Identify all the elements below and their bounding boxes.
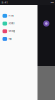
staticText: Activity bbox=[8, 22, 14, 25]
staticText: ▪▪▪ bbox=[51, 1, 54, 4]
button[interactable]: Activity bbox=[0, 20, 37, 27]
staticText: Profile bbox=[8, 15, 13, 17]
staticText: 9:41 bbox=[1, 1, 7, 4]
staticText: Settings bbox=[8, 30, 15, 32]
staticText: Help bbox=[8, 38, 11, 40]
button[interactable]: Settings bbox=[0, 27, 37, 35]
button[interactable]: Profile bbox=[0, 12, 37, 20]
button[interactable]: Help bbox=[0, 35, 37, 43]
